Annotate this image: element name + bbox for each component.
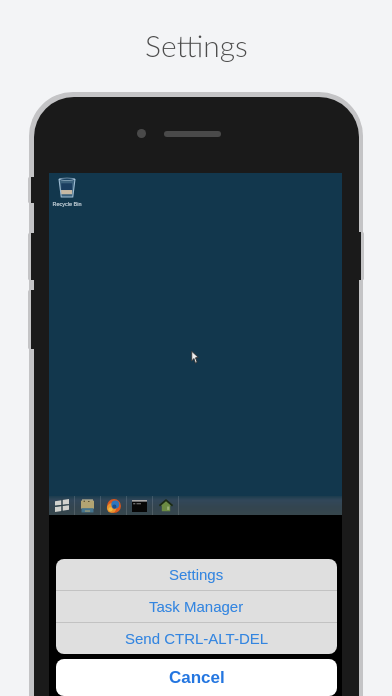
button[interactable]: Task Manager <box>56 591 337 622</box>
staticText: Recycle Bin <box>52 201 82 207</box>
button[interactable]: File Explorer <box>75 496 100 515</box>
staticText: Cancel <box>169 668 225 687</box>
button[interactable]: Firefox <box>101 496 126 515</box>
button[interactable]: Command Prompt <box>127 496 152 515</box>
staticText: Settings <box>145 27 248 63</box>
button[interactable]: Settings <box>56 559 337 590</box>
button[interactable]: Home <box>153 496 178 515</box>
button[interactable]: Send CTRL-ALT-DEL <box>56 623 337 654</box>
staticText: Task Manager <box>149 598 244 615</box>
staticText: Send CTRL-ALT-DEL <box>125 630 269 647</box>
staticText: Settings <box>169 566 224 583</box>
button[interactable]: Cancel <box>56 659 337 696</box>
button[interactable]: Start <box>49 496 74 515</box>
